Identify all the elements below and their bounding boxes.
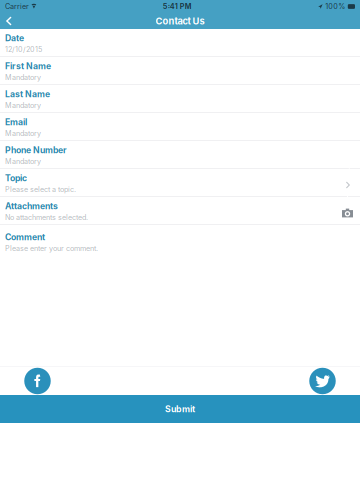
button[interactable]: Topic xyxy=(0,169,360,197)
staticText: Phone Number xyxy=(5,145,67,155)
button[interactable]: Back xyxy=(0,13,44,29)
staticText: Comment xyxy=(5,232,45,242)
staticText: Topic xyxy=(5,173,27,183)
button[interactable]: Facebook xyxy=(24,367,51,394)
button[interactable]: Submit xyxy=(0,395,360,423)
staticText: Please select a topic. xyxy=(5,185,76,194)
staticText: Mandatory xyxy=(5,101,41,110)
staticText: Carrier xyxy=(5,2,29,11)
staticText: First Name xyxy=(5,61,51,71)
staticText: 5:41 PM xyxy=(163,2,192,11)
staticText: Submit xyxy=(165,404,195,414)
staticText: Mandatory xyxy=(5,73,41,82)
staticText: No attachments selected. xyxy=(5,213,88,222)
staticText: 100% xyxy=(325,2,345,11)
staticText: 12/10/2015 xyxy=(5,45,42,54)
staticText: Date xyxy=(5,33,24,43)
staticText: Please enter your comment. xyxy=(5,244,98,253)
staticText: Mandatory xyxy=(5,157,41,166)
button[interactable]: Attachments xyxy=(0,197,360,225)
staticText: Last Name xyxy=(5,89,50,99)
staticText: Contact Us xyxy=(155,15,204,27)
staticText: Email xyxy=(5,117,27,127)
staticText: Attachments xyxy=(5,201,58,211)
staticText: Mandatory xyxy=(5,129,41,138)
button[interactable]: Twitter xyxy=(309,367,336,394)
